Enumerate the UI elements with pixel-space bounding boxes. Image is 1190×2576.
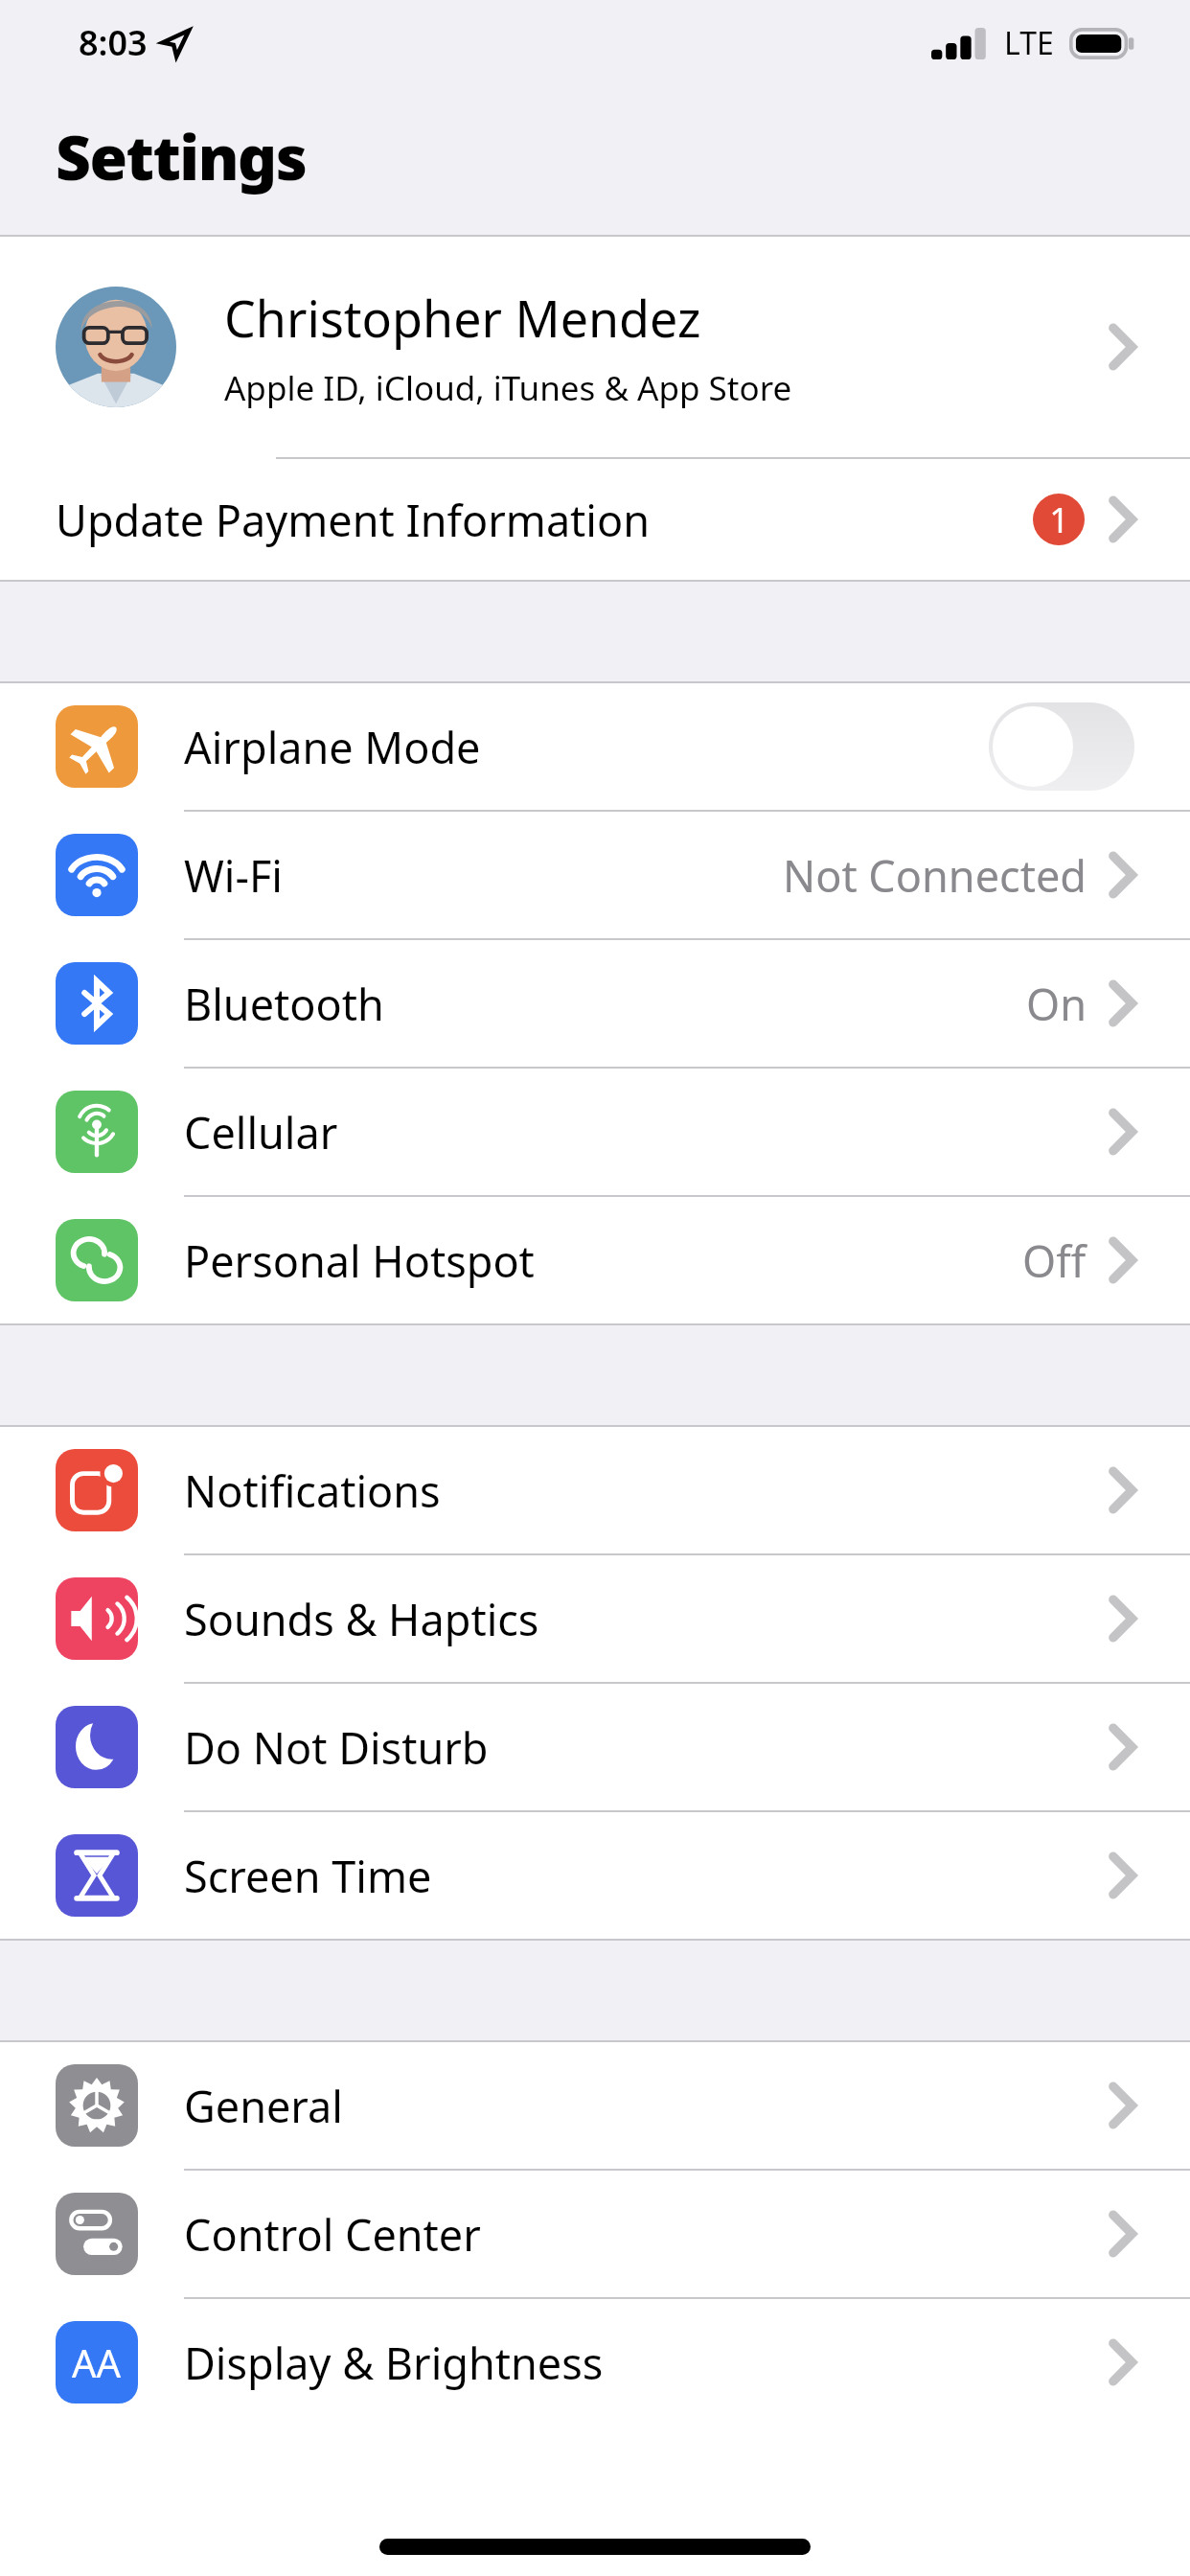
button[interactable]: Wi-Fi	[0, 812, 1190, 938]
button[interactable]: Sounds & Haptics	[0, 1555, 1190, 1682]
staticText: Airplane Mode	[184, 718, 481, 776]
staticText: Christopher Mendez	[224, 284, 701, 352]
staticText: LTE	[1004, 22, 1054, 64]
staticText: Cellular	[184, 1103, 338, 1161]
staticText: Notifications	[184, 1461, 441, 1520]
staticText: Apple ID, iCloud, iTunes & App Store	[224, 365, 792, 411]
staticText: Wi-Fi	[184, 846, 283, 905]
staticText: Control Center	[184, 2205, 481, 2264]
staticText: 1	[1049, 496, 1069, 543]
staticText: Bluetooth	[184, 975, 384, 1033]
button[interactable]: Personal Hotspot	[0, 1197, 1190, 1323]
staticText: Screen Time	[184, 1847, 432, 1905]
staticText: Do Not Disturb	[184, 1718, 489, 1777]
staticText: Update Payment Information	[56, 491, 651, 549]
button[interactable]: Christopher Mendez	[0, 237, 1190, 457]
button[interactable]: AA	[0, 2299, 1190, 2426]
staticText: AA	[72, 2336, 122, 2388]
staticText: Personal Hotspot	[184, 1231, 535, 1290]
button[interactable]: Screen Time	[0, 1812, 1190, 1939]
staticText: Settings	[56, 115, 307, 198]
staticText: Not Connected	[783, 846, 1087, 905]
staticText: Off	[1022, 1231, 1087, 1290]
button[interactable]: Update Payment Information	[0, 459, 1190, 580]
staticText: On	[1026, 975, 1087, 1033]
button[interactable]: Bluetooth	[0, 940, 1190, 1067]
button[interactable]: Airplane Mode	[0, 683, 1190, 810]
button[interactable]: Cellular	[0, 1069, 1190, 1195]
staticText: General	[184, 2077, 343, 2135]
button[interactable]: Do Not Disturb	[0, 1684, 1190, 1810]
staticText: 8:03	[79, 19, 148, 66]
button[interactable]: General	[0, 2042, 1190, 2169]
staticText: Sounds & Haptics	[184, 1590, 539, 1648]
button[interactable]: Notifications	[0, 1427, 1190, 1553]
button[interactable]: Airplane Mode switch, off	[989, 702, 1134, 791]
staticText: Display & Brightness	[184, 2334, 604, 2392]
button[interactable]: Control Center	[0, 2171, 1190, 2297]
